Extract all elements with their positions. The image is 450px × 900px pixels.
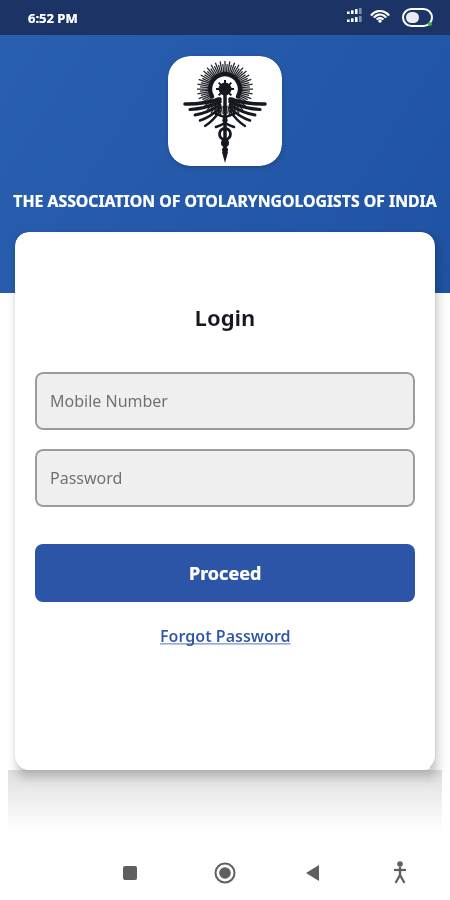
staticText: 6:52 PM — [28, 9, 78, 27]
staticText: THE ASSOCIATION OF OTOLARYNGOLOGISTS OF … — [0, 190, 450, 212]
staticText: Password — [50, 467, 123, 489]
button[interactable]: Proceed — [35, 544, 415, 602]
staticText: Proceed — [189, 561, 262, 586]
button[interactable]: Mobile Number — [35, 372, 415, 430]
button[interactable]: Password — [35, 449, 415, 507]
staticText: Mobile Number — [50, 390, 168, 412]
button[interactable]: Forgot Password — [160, 625, 291, 647]
staticText: Login — [15, 302, 435, 332]
